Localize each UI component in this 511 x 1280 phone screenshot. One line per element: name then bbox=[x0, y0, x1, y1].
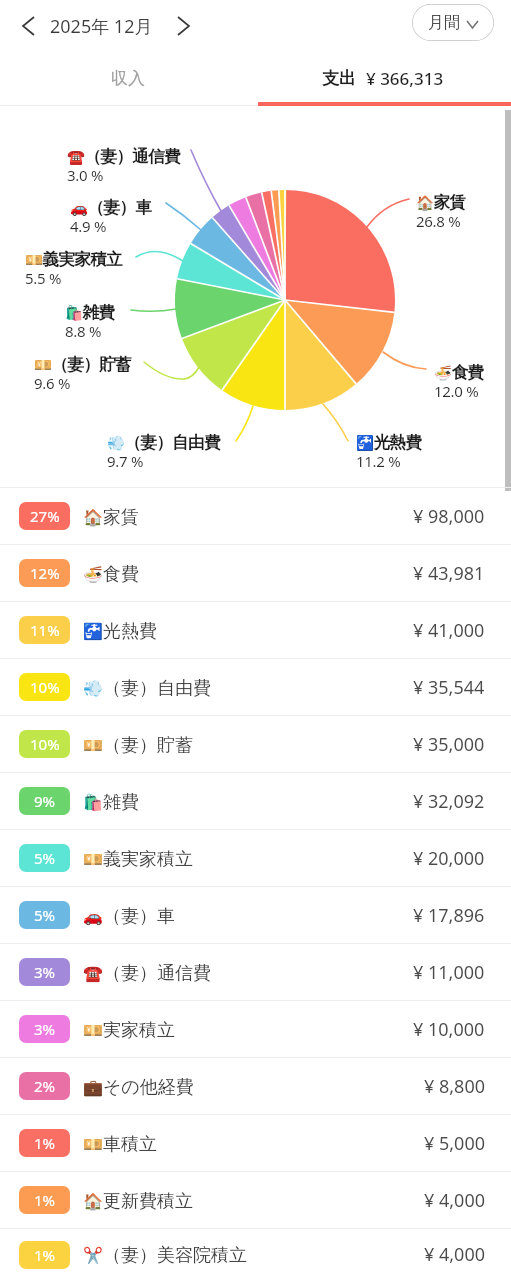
staticText: 🚰光熱費 bbox=[356, 432, 422, 453]
staticText: 🏠更新費積立 bbox=[83, 1190, 193, 1213]
button[interactable]: 12% bbox=[0, 545, 511, 601]
staticText: 1% bbox=[34, 1190, 56, 1210]
staticText: 🍜食費 bbox=[83, 563, 139, 586]
staticText: 10% bbox=[30, 734, 60, 754]
button[interactable]: 3% bbox=[0, 944, 511, 1000]
staticText: ¥ 35,544 bbox=[413, 675, 485, 700]
staticText: 💼その他経費 bbox=[83, 1076, 194, 1099]
button[interactable]: 11% bbox=[0, 602, 511, 658]
staticText: 🚗（妻）車 bbox=[83, 905, 175, 928]
staticText: 5% bbox=[34, 848, 56, 868]
staticText: ¥ 366,313 bbox=[366, 67, 444, 90]
staticText: 8.8 % bbox=[65, 321, 102, 341]
staticText: ☎️（妻）通信費 bbox=[83, 962, 211, 985]
staticText: 11% bbox=[30, 620, 60, 640]
button[interactable]: 2% bbox=[0, 1058, 511, 1114]
staticText: ¥ 4,000 bbox=[424, 1242, 485, 1267]
button[interactable]: 10% bbox=[0, 659, 511, 715]
staticText: ¥ 32,092 bbox=[413, 789, 485, 814]
staticText: ¥ 41,000 bbox=[413, 618, 485, 643]
staticText: 🚰光熱費 bbox=[83, 620, 157, 643]
staticText: 💨（妻）自由費 bbox=[83, 677, 211, 700]
button[interactable]: Next month bbox=[163, 6, 203, 46]
staticText: 3.0 % bbox=[67, 165, 104, 185]
staticText: 🏠家賃 bbox=[83, 506, 139, 529]
staticText: 9.7 % bbox=[107, 451, 144, 471]
staticText: ✂️（妻）美容院積立 bbox=[83, 1244, 247, 1267]
staticText: 11.2 % bbox=[356, 451, 401, 471]
staticText: 収入 bbox=[111, 68, 145, 89]
staticText: 1% bbox=[34, 1133, 56, 1153]
button[interactable]: Previous month bbox=[10, 8, 46, 44]
staticText: 💴（妻）貯蓄 bbox=[83, 734, 193, 757]
staticText: 4.9 % bbox=[70, 216, 107, 236]
staticText: 🛍️雑費 bbox=[65, 302, 115, 323]
staticText: 💴義実家積立 bbox=[25, 249, 122, 270]
staticText: ¥ 17,896 bbox=[413, 903, 485, 928]
staticText: 3% bbox=[34, 1019, 56, 1039]
staticText: ¥ 35,000 bbox=[413, 732, 485, 757]
staticText: 🏠家賃 bbox=[416, 192, 466, 213]
button[interactable]: 10% bbox=[0, 716, 511, 772]
button[interactable]: 1% bbox=[0, 1229, 511, 1280]
button[interactable]: 3% bbox=[0, 1001, 511, 1057]
staticText: 5% bbox=[34, 905, 56, 925]
staticText: 💴実家積立 bbox=[83, 1019, 175, 1042]
staticText: ¥ 8,800 bbox=[424, 1074, 485, 1099]
staticText: 2% bbox=[34, 1076, 56, 1096]
button[interactable]: 支出 bbox=[255, 51, 511, 106]
staticText: 💨（妻）自由費 bbox=[107, 432, 220, 453]
staticText: 支出 bbox=[322, 68, 356, 89]
staticText: ¥ 5,000 bbox=[424, 1131, 485, 1156]
staticText: 🚗（妻）車 bbox=[70, 197, 152, 218]
button[interactable]: 5% bbox=[0, 830, 511, 886]
staticText: 26.8 % bbox=[416, 211, 461, 231]
button[interactable]: 収入 bbox=[0, 51, 255, 106]
staticText: ¥ 98,000 bbox=[413, 504, 485, 529]
staticText: 27% bbox=[30, 506, 60, 526]
staticText: 5.5 % bbox=[25, 268, 62, 288]
staticText: 💴車積立 bbox=[83, 1133, 157, 1156]
staticText: 💴義実家積立 bbox=[83, 848, 193, 871]
staticText: ¥ 20,000 bbox=[413, 846, 485, 871]
button[interactable]: 月間 bbox=[412, 4, 494, 41]
staticText: 🍜食費 bbox=[434, 362, 484, 383]
button[interactable]: 27% bbox=[0, 488, 511, 544]
staticText: ☎️（妻）通信費 bbox=[67, 146, 180, 167]
staticText: 1% bbox=[34, 1245, 56, 1265]
staticText: 10% bbox=[30, 677, 60, 697]
staticText: 9.6 % bbox=[34, 373, 71, 393]
button[interactable]: 5% bbox=[0, 887, 511, 943]
staticText: 💴（妻）貯蓄 bbox=[34, 354, 131, 375]
staticText: ¥ 43,981 bbox=[413, 561, 485, 586]
staticText: 月間 bbox=[428, 13, 460, 33]
button[interactable]: 9% bbox=[0, 773, 511, 829]
button[interactable]: 1% bbox=[0, 1115, 511, 1171]
staticText: 2025年 12月 bbox=[50, 14, 153, 39]
button[interactable]: 1% bbox=[0, 1172, 511, 1228]
staticText: 9% bbox=[34, 791, 56, 811]
staticText: 3% bbox=[34, 962, 56, 982]
staticText: ¥ 4,000 bbox=[424, 1188, 485, 1213]
staticText: 🛍️雑費 bbox=[83, 791, 139, 814]
staticText: 12.0 % bbox=[434, 381, 479, 401]
staticText: ¥ 11,000 bbox=[413, 960, 485, 985]
staticText: 12% bbox=[30, 563, 60, 583]
staticText: ¥ 10,000 bbox=[413, 1017, 485, 1042]
